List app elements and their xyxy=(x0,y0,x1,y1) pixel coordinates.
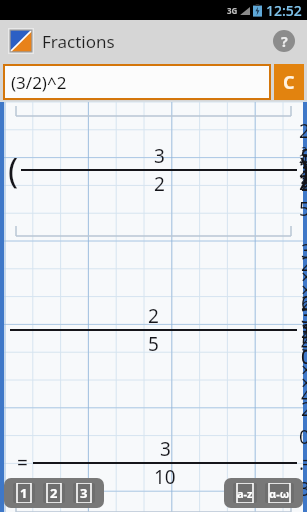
staticText: 3 xyxy=(80,484,88,502)
staticText: 1 xyxy=(20,484,28,502)
button[interactable]: Help xyxy=(269,26,299,56)
staticText: ( xyxy=(8,147,19,193)
staticText: 2 xyxy=(154,171,165,197)
staticText: 3G xyxy=(227,5,238,16)
staticText: 2 xyxy=(50,484,58,502)
staticText: 12:52 xyxy=(266,1,302,20)
staticText: 2 xyxy=(148,303,159,329)
button[interactable]: α-ω xyxy=(265,483,294,503)
staticText: 5 xyxy=(148,331,159,357)
staticText: 3 xyxy=(154,143,165,169)
button[interactable]: a-z xyxy=(233,483,257,503)
staticText: Fractions xyxy=(42,30,115,53)
button[interactable]: 2 xyxy=(43,483,65,503)
staticText: a-z xyxy=(237,486,253,501)
staticText: 10 xyxy=(154,464,176,490)
staticText: α-ω xyxy=(269,486,290,501)
staticText: = xyxy=(17,450,28,476)
staticText: 3 xyxy=(160,436,171,462)
staticText: (3/2)^2 xyxy=(11,71,67,94)
button[interactable]: (3/2)^2 xyxy=(5,66,269,98)
button[interactable]: C xyxy=(274,64,304,100)
button[interactable]: 1 xyxy=(13,483,35,503)
staticText: ? xyxy=(281,32,288,51)
staticText: C xyxy=(283,70,295,95)
button[interactable]: 3 xyxy=(73,483,95,503)
